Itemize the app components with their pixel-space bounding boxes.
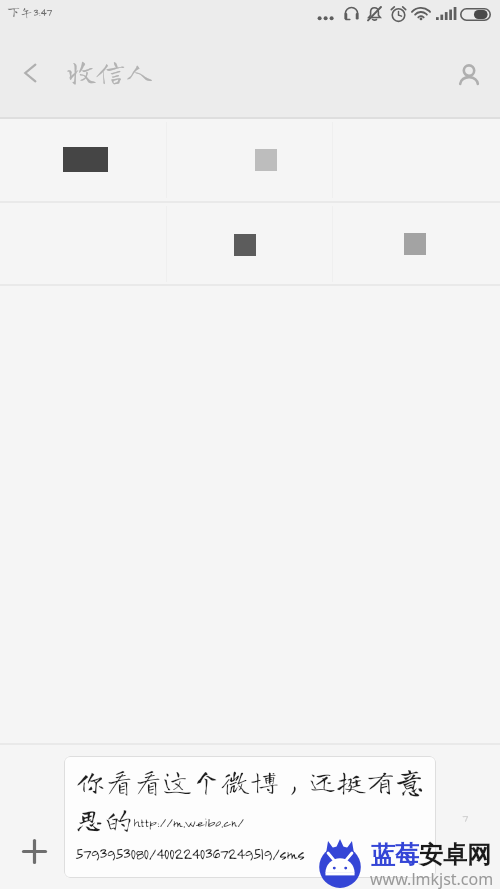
staticText: 5793953080/4002240367249519/sms	[75, 844, 305, 863]
button[interactable]: 你看看这个微博，还挺有意	[64, 756, 436, 878]
button[interactable]: Back	[3, 44, 61, 102]
button[interactable]: Quick action	[166, 202, 333, 286]
staticText: http://m.weibo.cn/	[133, 813, 244, 829]
staticText: 思的	[75, 804, 134, 833]
button[interactable]: Quick action	[333, 202, 500, 286]
staticText: 下午3:47	[7, 6, 52, 19]
staticText: 7	[462, 812, 468, 825]
button[interactable]: Quick action	[0, 118, 166, 202]
staticText: 蓝莓	[371, 840, 419, 870]
staticText: www.lmkjst.com	[370, 868, 494, 889]
button[interactable]: Quick action	[166, 118, 333, 202]
button[interactable]: Add attachment	[1, 818, 67, 884]
button[interactable]: Contacts	[440, 46, 498, 104]
staticText: 你看看这个微博，还挺有意	[76, 766, 425, 795]
staticText: 安卓网	[419, 840, 491, 870]
staticText: 收信人	[67, 56, 155, 85]
